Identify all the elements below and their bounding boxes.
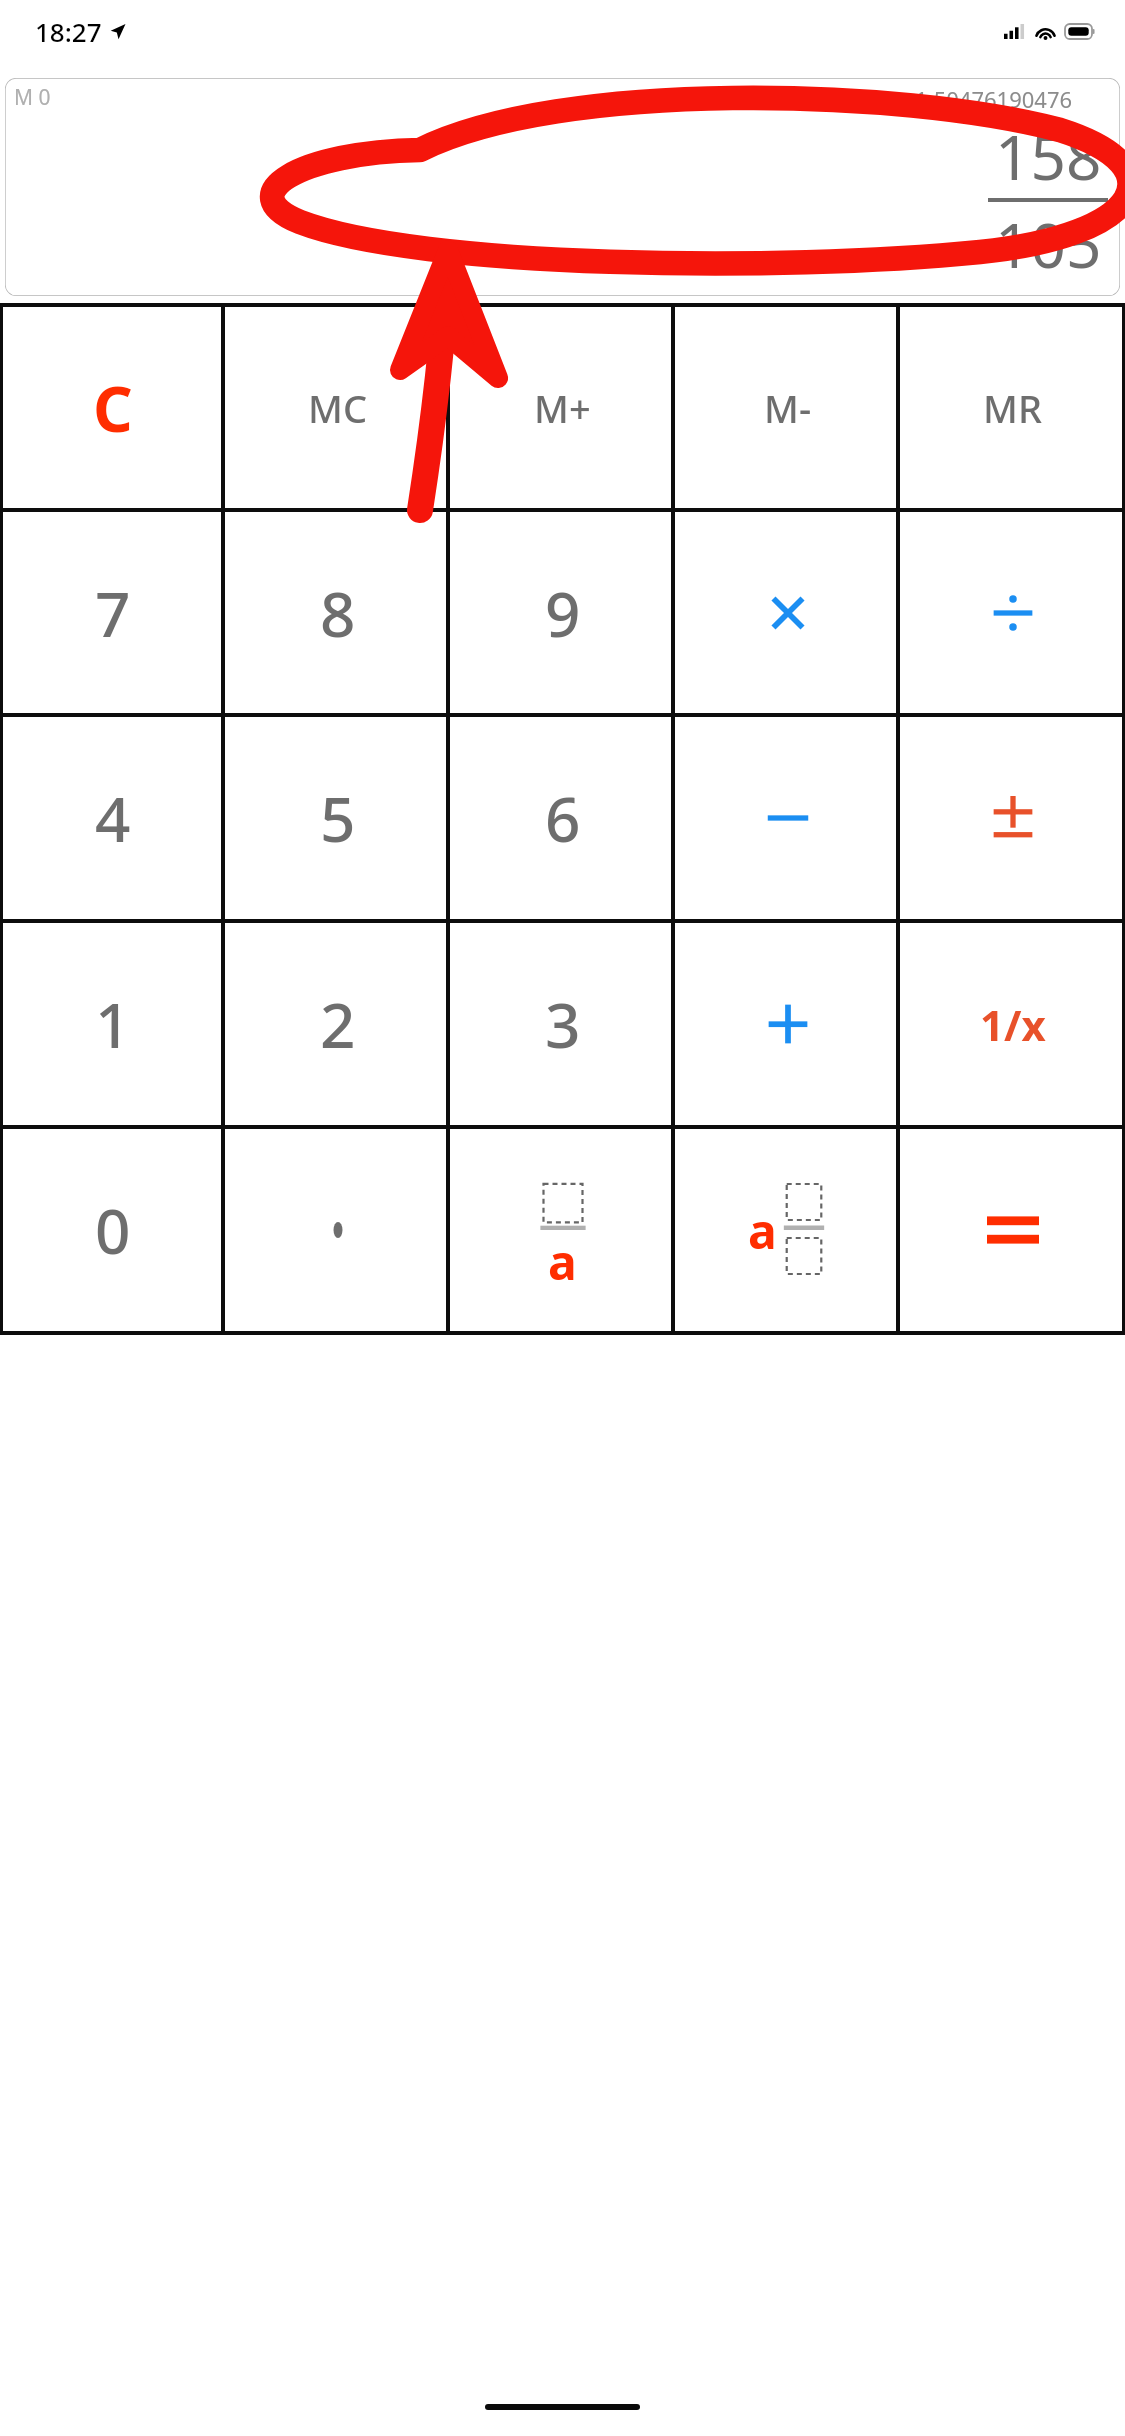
button[interactable]: 5: [225, 717, 450, 919]
staticText: 1: [95, 982, 131, 1066]
button[interactable]: Multiply: [675, 512, 900, 713]
staticText: value = 1.50476190476: [836, 84, 1073, 114]
button[interactable]: 7: [0, 512, 225, 713]
button[interactable]: Mixed number: [675, 1129, 900, 1331]
staticText: 9: [545, 571, 581, 655]
button[interactable]: 3: [450, 923, 675, 1125]
staticText: 6: [545, 776, 581, 860]
staticText: a: [548, 1229, 577, 1294]
staticText: 8: [320, 571, 356, 655]
staticText: M 0: [14, 83, 51, 112]
staticText: C: [93, 366, 133, 450]
button[interactable]: Plus minus: [900, 717, 1125, 919]
button[interactable]: 0: [0, 1129, 225, 1331]
button[interactable]: Fraction: [450, 1129, 675, 1331]
staticText: 7: [95, 571, 131, 655]
button[interactable]: Divide: [900, 512, 1125, 713]
staticText: 158: [995, 114, 1102, 198]
button[interactable]: Decimal point: [225, 1129, 450, 1331]
staticText: a: [748, 1198, 777, 1263]
button[interactable]: 9: [450, 512, 675, 713]
staticText: M-: [764, 382, 812, 434]
staticText: 105: [995, 202, 1102, 286]
staticText: MR: [983, 382, 1042, 434]
button[interactable]: Subtract: [675, 717, 900, 919]
button[interactable]: Equals: [900, 1129, 1125, 1331]
staticText: 4: [95, 776, 131, 860]
button[interactable]: 2: [225, 923, 450, 1125]
staticText: MC: [308, 382, 368, 434]
staticText: M+: [534, 382, 591, 434]
button[interactable]: Reciprocal: [900, 923, 1125, 1125]
button[interactable]: C: [0, 307, 225, 508]
button[interactable]: Add: [675, 923, 900, 1125]
staticText: 1/x: [980, 996, 1046, 1053]
button[interactable]: M-: [675, 307, 900, 508]
button[interactable]: 8: [225, 512, 450, 713]
button[interactable]: MC: [225, 307, 450, 508]
button[interactable]: M+: [450, 307, 675, 508]
staticText: 5: [320, 776, 356, 860]
button[interactable]: 1: [0, 923, 225, 1125]
button[interactable]: 4: [0, 717, 225, 919]
staticText: 18:27: [35, 14, 102, 49]
staticText: 0: [95, 1188, 131, 1272]
button[interactable]: MR: [900, 307, 1125, 508]
staticText: 2: [320, 982, 356, 1066]
staticText: 3: [545, 982, 581, 1066]
button[interactable]: 6: [450, 717, 675, 919]
